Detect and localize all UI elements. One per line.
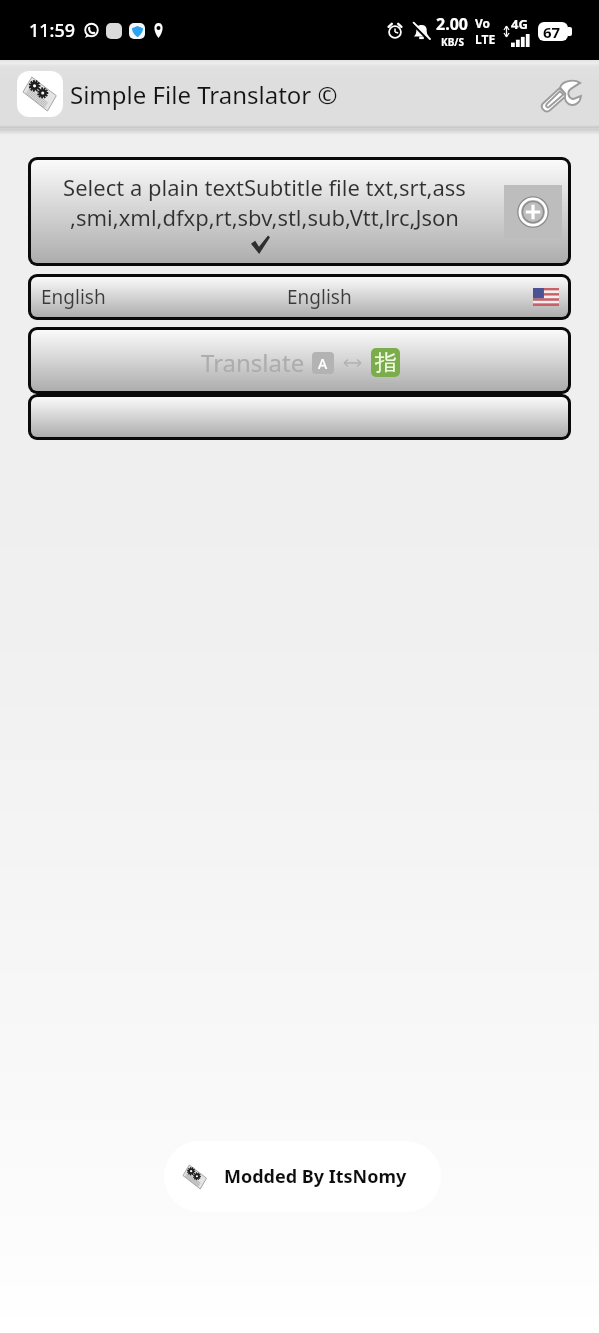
staticText: 11:59 xyxy=(29,18,76,43)
staticText: 4G xyxy=(511,15,528,33)
staticText: Vo xyxy=(475,15,491,31)
staticText: Translate xyxy=(201,346,305,379)
staticText: 67 xyxy=(543,22,561,41)
button[interactable]: Settings xyxy=(535,66,591,122)
staticText: 2.00 xyxy=(436,13,468,35)
staticText: English xyxy=(41,284,106,310)
staticText: KB/S xyxy=(441,35,464,49)
staticText: Modded By ItsNomy xyxy=(224,1164,407,1189)
staticText: LTE xyxy=(475,31,496,47)
button[interactable]: Select a plain textSubtitle file txt,srt… xyxy=(31,160,568,263)
staticText: Select a plain textSubtitle file txt,srt… xyxy=(33,172,496,232)
button[interactable]: Translate xyxy=(31,330,568,391)
button[interactable]: Add file xyxy=(504,185,562,239)
other: Progress xyxy=(31,397,568,437)
staticText: English xyxy=(287,284,352,310)
staticText: 指 xyxy=(375,349,397,377)
button[interactable]: English xyxy=(31,277,568,317)
staticText: A xyxy=(318,354,328,373)
button[interactable]: Modded By ItsNomy xyxy=(164,1141,441,1212)
button[interactable]: Progress xyxy=(31,397,568,437)
staticText: Simple File Translator © xyxy=(70,78,338,111)
